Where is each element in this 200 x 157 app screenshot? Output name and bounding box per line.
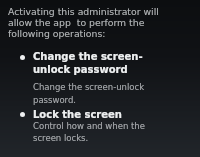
staticText: Change the screen- unlock password (33, 51, 143, 75)
staticText: Activating this administrator will allow… (8, 6, 159, 39)
staticText: Change the screen-unlock password. (33, 82, 145, 105)
staticText: Lock the screen (33, 109, 122, 121)
staticText: Control how and when the screen locks. (33, 121, 145, 143)
